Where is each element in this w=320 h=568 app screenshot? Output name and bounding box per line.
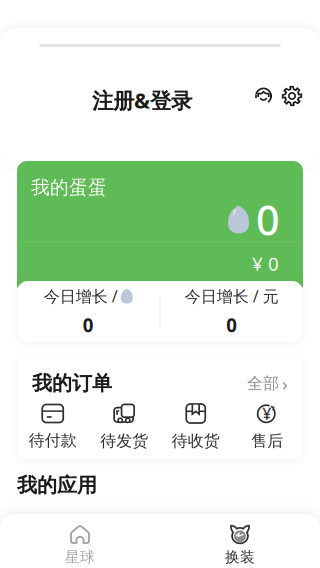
staticText: 我的订单 bbox=[32, 371, 112, 396]
staticText: 今日增长 / 元 bbox=[185, 285, 279, 307]
button[interactable]: 换装 bbox=[160, 524, 320, 566]
staticText: 0 bbox=[83, 313, 94, 337]
staticText: 0 bbox=[226, 313, 237, 337]
staticText: ¥ 0 bbox=[252, 251, 279, 276]
button[interactable]: 客服 bbox=[253, 85, 275, 107]
staticText: › bbox=[282, 371, 288, 396]
button[interactable]: 设置 bbox=[281, 85, 303, 107]
staticText: 待收货 bbox=[172, 431, 220, 451]
staticText: 售后 bbox=[251, 431, 283, 451]
button[interactable]: 待付款 bbox=[17, 403, 88, 450]
staticText: 注册&登录 bbox=[92, 86, 192, 114]
staticText: 0 bbox=[256, 192, 280, 247]
staticText: 全部 bbox=[247, 374, 279, 393]
staticText: 待付款 bbox=[29, 430, 77, 450]
button[interactable]: ¥ bbox=[231, 403, 303, 451]
staticText: ¥ bbox=[262, 403, 271, 424]
staticText: 我的应用 bbox=[17, 473, 97, 498]
staticText: 我的蛋蛋 bbox=[31, 176, 107, 199]
button[interactable]: 待发货 bbox=[88, 403, 160, 451]
button[interactable]: 星球 bbox=[0, 524, 160, 566]
staticText: 换装 bbox=[225, 548, 255, 566]
button[interactable]: 我的订单 bbox=[17, 357, 273, 382]
staticText: 今日增长 / bbox=[44, 285, 118, 307]
button[interactable]: 待收货 bbox=[160, 403, 231, 451]
staticText: 星球 bbox=[65, 548, 95, 566]
staticText: 待发货 bbox=[100, 431, 148, 451]
